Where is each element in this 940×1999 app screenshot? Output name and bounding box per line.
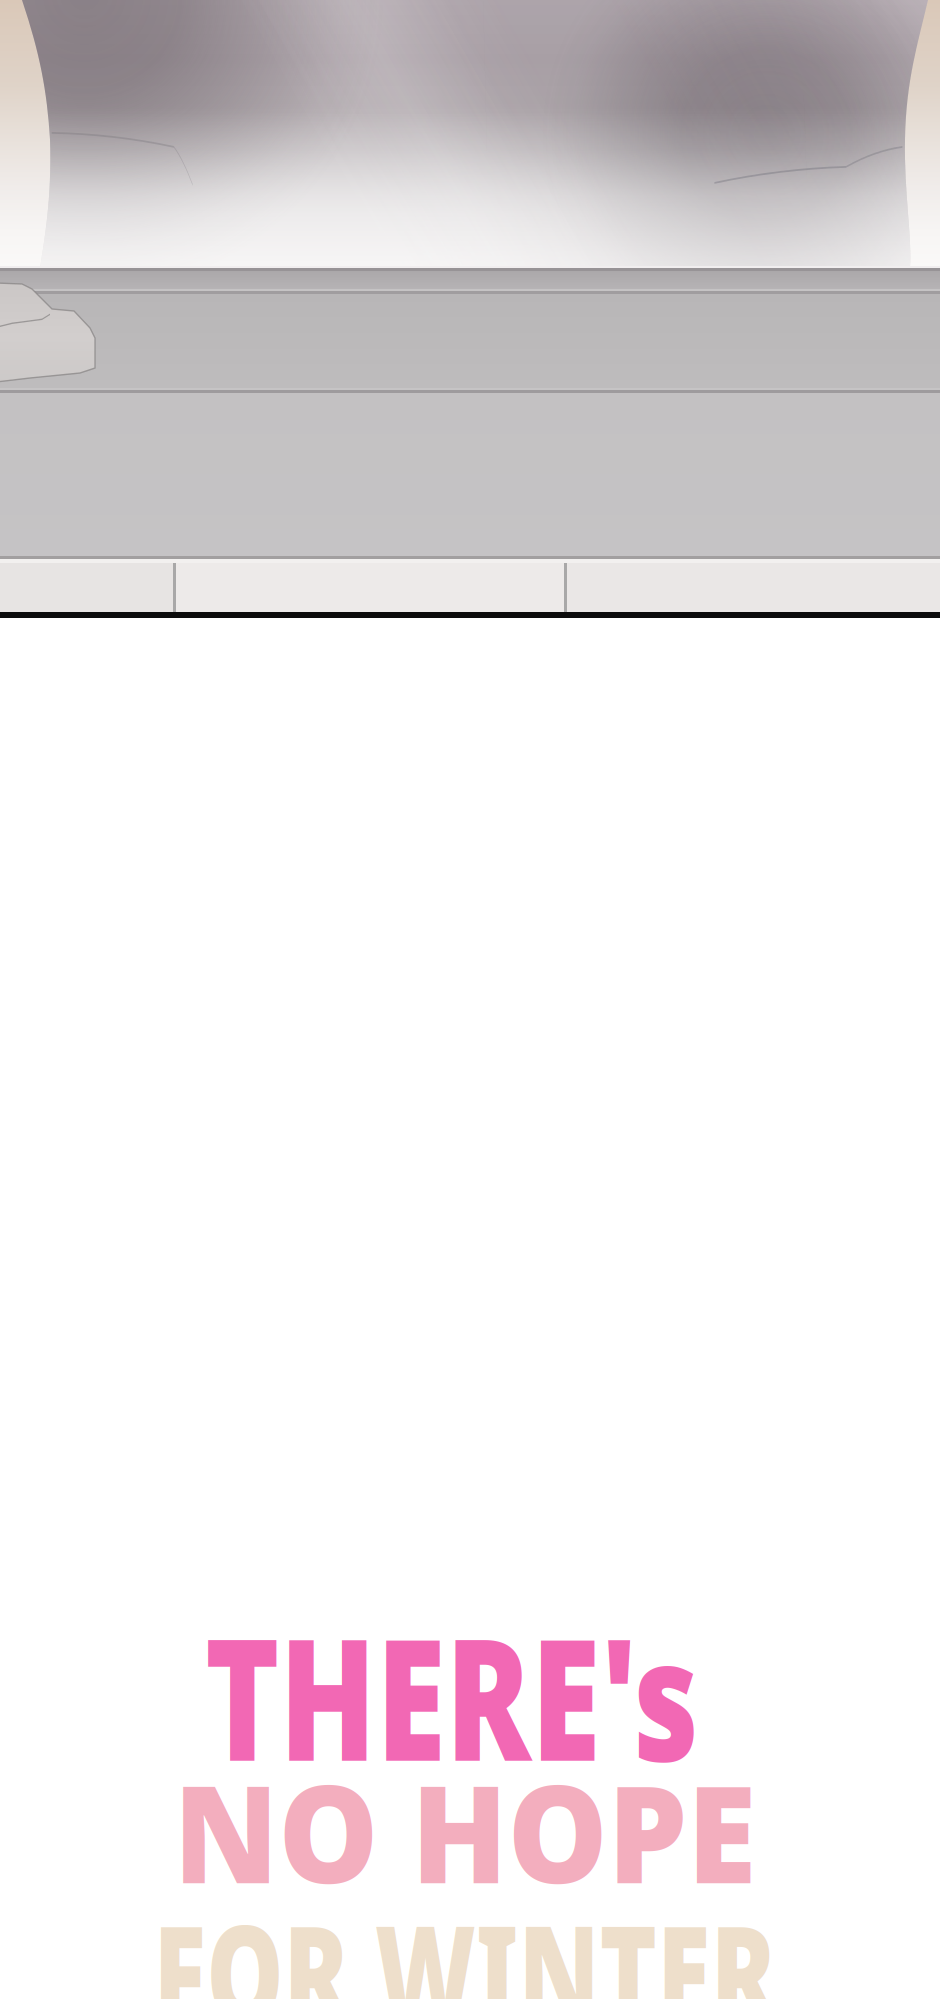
staticText: THERE's xyxy=(120,1583,783,1807)
staticText: NO HOPE xyxy=(153,1742,776,1920)
staticText: FOR WINTER xyxy=(34,1882,896,1999)
